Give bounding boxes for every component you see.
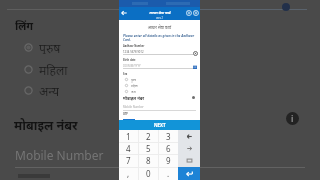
button[interactable]: Back xyxy=(120,9,128,17)
button[interactable]: Keyboard xyxy=(178,154,200,167)
staticText: 0 xyxy=(146,168,151,179)
button[interactable]: Info xyxy=(286,112,299,125)
staticText: 3 xyxy=(166,131,171,142)
button[interactable]: अन्य xyxy=(24,83,94,97)
staticText: पुरुष xyxy=(39,40,61,54)
button[interactable]: महिला xyxy=(125,83,149,88)
staticText: 9 xyxy=(166,155,171,166)
staticText: 2 xyxy=(146,131,151,142)
staticText: 7 xyxy=(126,155,131,166)
button[interactable]: 1 xyxy=(119,130,138,142)
staticText: Please enter all details as given in the… xyxy=(123,34,194,38)
staticText: प्रपत्र-1 xyxy=(156,16,164,20)
button[interactable]: पुरुष xyxy=(125,77,149,82)
button[interactable]: Pick date xyxy=(192,64,197,69)
staticText: Aadhaar Number xyxy=(123,44,145,47)
staticText: मोबाइल नंबर xyxy=(123,96,145,102)
button[interactable]: 9 xyxy=(158,154,178,167)
button[interactable]: 2 xyxy=(138,130,158,142)
staticText: 1234 5678 9012 xyxy=(123,50,144,54)
button[interactable]: Enter xyxy=(178,167,200,180)
button[interactable]: 3 xyxy=(158,130,178,142)
staticText: लिंग xyxy=(15,18,34,33)
button[interactable]: महिला xyxy=(24,62,94,76)
staticText: महिला xyxy=(131,84,138,88)
button[interactable]: अन्य xyxy=(125,89,149,94)
button[interactable]: 4 xyxy=(119,142,138,154)
staticText: 6 xyxy=(166,143,171,154)
button[interactable]: NEXT xyxy=(119,120,200,130)
staticText: , xyxy=(127,168,130,179)
staticText: 4 xyxy=(126,143,131,154)
staticText: 5 xyxy=(146,143,151,154)
staticText: Sex xyxy=(123,72,128,75)
staticText: NEXT xyxy=(154,122,166,128)
staticText: 8 xyxy=(146,155,151,166)
button[interactable]: . xyxy=(158,167,178,180)
staticText: आधार सेवा कार्ड xyxy=(119,25,200,30)
staticText: DD/MM/YYYY xyxy=(123,64,141,68)
button[interactable]: 0 xyxy=(138,167,158,180)
staticText: आधार सेवा कार्ड xyxy=(149,10,171,15)
button[interactable]: Backspace xyxy=(178,130,200,142)
staticText: महिला xyxy=(39,62,68,76)
staticText: अन्य xyxy=(131,90,136,94)
button[interactable]: Account xyxy=(193,10,199,16)
button[interactable]: Settings xyxy=(186,10,192,16)
staticText: Birth date xyxy=(123,58,136,61)
button[interactable]: 7 xyxy=(119,154,138,167)
button[interactable]: 8 xyxy=(138,154,158,167)
staticText: i xyxy=(291,113,294,124)
button[interactable]: , xyxy=(119,167,138,180)
button[interactable]: पुरुष xyxy=(24,40,94,54)
staticText: 1 xyxy=(126,131,131,142)
staticText: Mobile Number xyxy=(123,105,144,109)
button[interactable]: 6 xyxy=(158,142,178,154)
staticText: . xyxy=(167,168,170,179)
staticText: Card. xyxy=(123,38,131,42)
staticText: अन्य xyxy=(39,83,59,97)
button[interactable]: Next field xyxy=(178,142,200,154)
staticText: OTP xyxy=(123,112,128,115)
staticText: Mobile Number xyxy=(15,147,104,163)
button[interactable]: Settings xyxy=(192,50,198,56)
staticText: मोबाइल नंबर xyxy=(14,117,78,134)
staticText: पुरुष xyxy=(131,78,136,82)
button[interactable]: 5 xyxy=(138,142,158,154)
button[interactable]: Information xyxy=(191,95,196,100)
